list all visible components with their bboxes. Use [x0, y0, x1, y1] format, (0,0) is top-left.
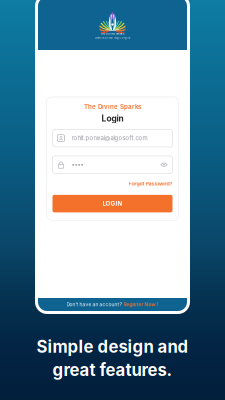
staticText: Forgot Password?	[128, 180, 172, 187]
staticText: Login	[101, 113, 123, 123]
staticText: LOGIN	[102, 200, 122, 207]
staticText: The Divine Sparks	[84, 103, 141, 110]
staticText: great features.	[52, 360, 172, 380]
staticText: Don't have an account?	[66, 302, 121, 307]
button[interactable]: LOGIN	[52, 195, 172, 212]
button[interactable]: Forgot Password?	[128, 180, 172, 187]
staticText: Where hope and magic begins	[95, 36, 130, 39]
staticText: rohit.porwal@algosoft.com	[71, 135, 147, 142]
staticText: THE DIVINE SPARKS	[101, 33, 124, 35]
staticText: Register Now !	[123, 302, 158, 307]
staticText: ••••	[71, 161, 83, 168]
staticText: Simple design and	[36, 337, 188, 357]
button[interactable]: Don't have an account?	[38, 298, 187, 311]
